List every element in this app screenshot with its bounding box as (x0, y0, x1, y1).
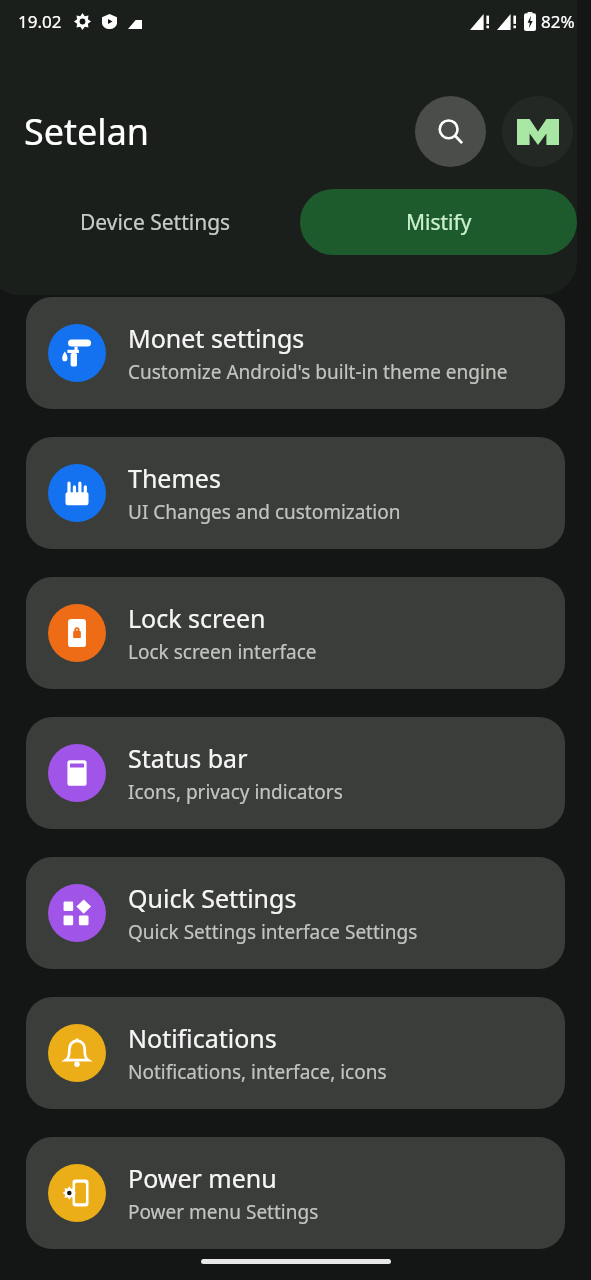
button[interactable]: Device Settings (10, 189, 300, 255)
staticText: Quick Settings (128, 881, 297, 915)
staticText: 82% (541, 10, 575, 33)
staticText: Customize Android's built-in theme engin… (128, 359, 508, 385)
staticText: Lock screen (128, 601, 266, 635)
staticText: Themes (128, 461, 221, 495)
button[interactable]: Notifications (26, 997, 565, 1109)
button[interactable]: Status bar (26, 717, 565, 829)
button[interactable]: Search (415, 96, 486, 167)
staticText: UI Changes and customization (128, 499, 401, 525)
staticText: Setelan (24, 107, 150, 156)
staticText: Icons, privacy indicators (128, 779, 343, 805)
button[interactable]: App logo (502, 96, 573, 167)
staticText: Power menu Settings (128, 1199, 319, 1225)
staticText: Lock screen interface (128, 639, 317, 665)
staticText: Power menu (128, 1161, 277, 1195)
staticText: Status bar (128, 741, 248, 775)
staticText: Device Settings (80, 208, 231, 237)
staticText: Notifications (128, 1021, 277, 1055)
button[interactable]: Quick Settings (26, 857, 565, 969)
staticText: Quick Settings interface Settings (128, 919, 418, 945)
button[interactable]: Themes (26, 437, 565, 549)
staticText: Mistify (406, 208, 472, 237)
button[interactable]: Power menu (26, 1137, 565, 1249)
staticText: 19.02 (18, 10, 62, 33)
button[interactable]: Lock screen (26, 577, 565, 689)
staticText: Monet settings (128, 321, 305, 355)
staticText: Notifications, interface, icons (128, 1059, 387, 1085)
button[interactable]: Mistify (300, 189, 577, 255)
button[interactable]: Monet settings (26, 297, 565, 409)
